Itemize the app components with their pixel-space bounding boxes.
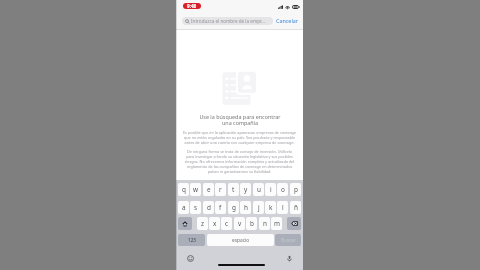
button[interactable]: o bbox=[277, 183, 288, 196]
button[interactable]: k bbox=[265, 201, 276, 214]
button[interactable]: j bbox=[253, 201, 264, 214]
staticText: p bbox=[294, 185, 298, 194]
staticText: g bbox=[232, 203, 236, 212]
staticText: o bbox=[281, 185, 285, 194]
staticText: c bbox=[225, 219, 229, 228]
button[interactable]: Emoji bbox=[186, 254, 195, 263]
staticText: t bbox=[232, 185, 235, 194]
button[interactable]: s bbox=[190, 201, 201, 214]
button[interactable]: n bbox=[259, 217, 270, 230]
staticText: 123 bbox=[188, 237, 196, 243]
button[interactable]: Mayúsculas bbox=[178, 217, 192, 230]
staticText: v bbox=[238, 219, 242, 228]
staticText: espacio bbox=[232, 237, 250, 244]
staticText: a bbox=[182, 203, 186, 212]
button[interactable]: y bbox=[240, 183, 251, 196]
button[interactable]: Buscar bbox=[275, 234, 301, 246]
button[interactable]: 123 bbox=[178, 234, 205, 246]
staticText: 9:48 bbox=[187, 3, 197, 9]
staticText: f bbox=[219, 203, 222, 212]
button[interactable]: f bbox=[215, 201, 226, 214]
button[interactable]: t bbox=[228, 183, 239, 196]
button[interactable]: Dictado bbox=[285, 254, 294, 263]
button[interactable]: z bbox=[197, 217, 208, 230]
staticText: r bbox=[219, 185, 222, 194]
button[interactable]: d bbox=[203, 201, 214, 214]
button[interactable]: c bbox=[221, 217, 232, 230]
staticText: i bbox=[270, 185, 272, 194]
button[interactable]: a bbox=[178, 201, 189, 214]
staticText: h bbox=[244, 203, 248, 212]
staticText: j bbox=[258, 203, 260, 212]
staticText: ñ bbox=[294, 203, 298, 212]
staticText: b bbox=[250, 219, 254, 228]
staticText: d bbox=[207, 203, 211, 212]
button[interactable]: v bbox=[234, 217, 245, 230]
button[interactable]: e bbox=[203, 183, 214, 196]
button[interactable]: m bbox=[271, 217, 282, 230]
staticText: Es posible que en la aplicación aparezca… bbox=[183, 130, 296, 145]
button[interactable]: p bbox=[290, 183, 301, 196]
staticText: k bbox=[269, 203, 273, 212]
staticText: Introduzca el nombre de la empr… bbox=[191, 18, 265, 24]
staticText: Use la búsqueda para encontrar una compa… bbox=[199, 113, 281, 127]
button[interactable]: ñ bbox=[290, 201, 301, 214]
button[interactable]: b bbox=[246, 217, 257, 230]
staticText: q bbox=[182, 185, 186, 194]
button[interactable]: u bbox=[253, 183, 264, 196]
button[interactable]: g bbox=[228, 201, 239, 214]
button[interactable]: Borrar bbox=[287, 217, 301, 230]
staticText: Buscar bbox=[281, 237, 296, 243]
button[interactable]: Cancelar bbox=[276, 17, 299, 24]
staticText: n bbox=[263, 219, 267, 228]
button[interactable]: x bbox=[209, 217, 220, 230]
button[interactable]: w bbox=[190, 183, 201, 196]
staticText: l bbox=[282, 203, 284, 212]
staticText: x bbox=[213, 219, 217, 228]
button[interactable]: r bbox=[215, 183, 226, 196]
button[interactable]: i bbox=[265, 183, 276, 196]
button[interactable]: espacio bbox=[207, 234, 274, 246]
staticText: z bbox=[201, 219, 205, 228]
button[interactable]: q bbox=[178, 183, 189, 196]
staticText: w bbox=[193, 185, 199, 194]
button[interactable]: Introduzca el nombre de la empr… bbox=[182, 17, 273, 25]
staticText: y bbox=[244, 185, 248, 194]
staticText: Cancelar bbox=[276, 17, 299, 24]
button[interactable]: h bbox=[240, 201, 251, 214]
staticText: e bbox=[207, 185, 211, 194]
staticText: De ninguna forma se trata de consejo de … bbox=[183, 149, 296, 174]
staticText: u bbox=[257, 185, 261, 194]
staticText: m bbox=[274, 219, 280, 228]
staticText: s bbox=[194, 203, 198, 212]
button[interactable]: l bbox=[277, 201, 288, 214]
